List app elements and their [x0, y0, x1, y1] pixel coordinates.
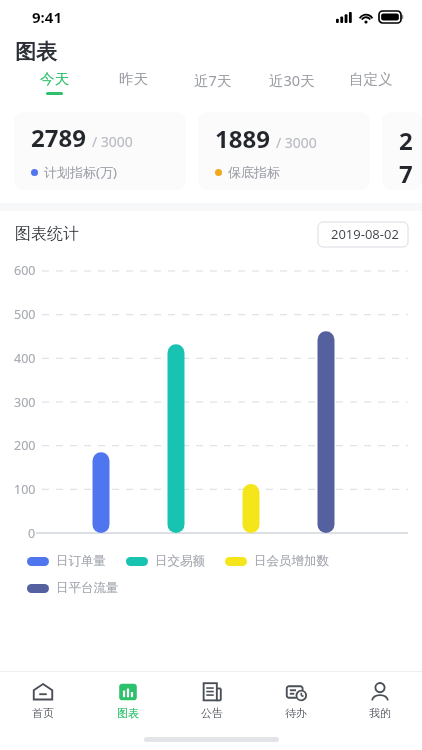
staticText: 100 [14, 481, 36, 498]
button[interactable]: 27 [382, 112, 422, 190]
staticText: 昨天 [119, 70, 148, 88]
staticText: 27 [399, 124, 422, 190]
staticText: 0 [28, 525, 36, 542]
staticText: / 3000 [92, 132, 133, 151]
button[interactable]: 图表 [85, 681, 170, 720]
button[interactable]: 近30天 [252, 70, 331, 94]
button[interactable]: 近7天 [173, 70, 252, 94]
staticText: 近30天 [269, 70, 315, 90]
staticText: 2789 [31, 121, 86, 154]
staticText: 600 [14, 262, 36, 279]
staticText: 日订单量 [56, 553, 106, 569]
staticText: 日会员增加数 [254, 553, 329, 569]
button[interactable]: 2789 [14, 112, 186, 190]
staticText: 我的 [369, 706, 391, 720]
staticText: 500 [14, 306, 36, 323]
staticText: 1889 [215, 122, 270, 155]
button[interactable]: 昨天 [94, 70, 173, 92]
staticText: 今天 [40, 70, 69, 88]
staticText: 计划指标(万) [44, 163, 117, 181]
staticText: / 3000 [276, 133, 317, 152]
button[interactable]: 今天 [14, 70, 94, 95]
staticText: 自定义 [349, 70, 393, 88]
staticText: 首页 [32, 706, 54, 720]
staticText: 日交易额 [155, 553, 205, 569]
button[interactable]: 首页 [0, 681, 85, 720]
staticText: 待办 [285, 706, 307, 720]
button[interactable]: 自定义 [331, 70, 410, 92]
staticText: 图表 [15, 39, 57, 65]
staticText: 200 [14, 437, 36, 454]
staticText: 近7天 [194, 70, 232, 90]
button[interactable]: 待办 [254, 681, 338, 720]
button[interactable]: 我的 [338, 681, 422, 720]
staticText: 400 [14, 350, 36, 367]
staticText: 图表统计 [15, 224, 79, 244]
button[interactable]: 公告 [170, 681, 254, 720]
staticText: 图表 [117, 706, 139, 720]
staticText: 300 [14, 394, 36, 411]
staticText: 2019-08-02 [331, 225, 399, 243]
button[interactable]: 1889 [198, 112, 370, 190]
button[interactable]: 2019-08-02 [322, 220, 408, 248]
staticText: 保底指标 [228, 164, 280, 180]
staticText: 公告 [201, 706, 223, 720]
staticText: 日平台流量 [56, 580, 119, 596]
staticText: 9:41 [32, 7, 62, 27]
